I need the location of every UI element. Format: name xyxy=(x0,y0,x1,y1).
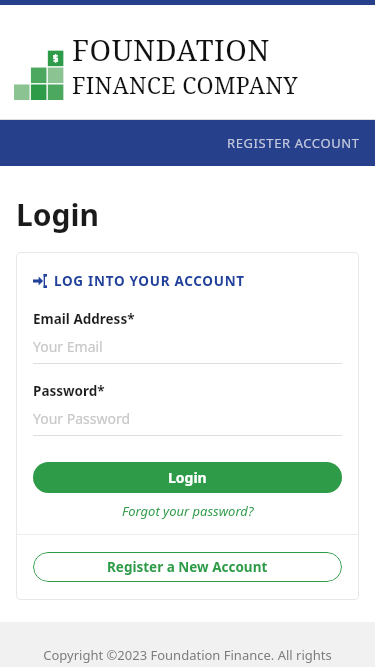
staticText: Copyright ©2023 Foundation Finance. All … xyxy=(43,646,332,664)
staticText: Password* xyxy=(33,382,105,400)
button[interactable]: Register a New Account xyxy=(33,552,342,582)
staticText: Login xyxy=(168,468,207,487)
staticText: Your Password xyxy=(33,409,131,428)
staticText: Forgot your password? xyxy=(122,502,254,520)
staticText: Your Email xyxy=(33,337,103,356)
staticText: Email Address* xyxy=(33,310,135,328)
button[interactable]: Login xyxy=(33,462,342,493)
other: Sign in xyxy=(33,274,47,288)
staticText: Login xyxy=(16,194,99,235)
button[interactable]: Your Password xyxy=(33,409,342,436)
staticText: FOUNDATION xyxy=(72,30,270,69)
staticText: LOG INTO YOUR ACCOUNT xyxy=(54,272,245,290)
staticText: Register a New Account xyxy=(107,558,268,576)
staticText: REGISTER ACCOUNT xyxy=(227,134,360,152)
staticText: FINANCE COMPANY xyxy=(72,69,298,100)
button[interactable]: Your Email xyxy=(33,337,342,364)
button[interactable]: REGISTER ACCOUNT xyxy=(212,124,375,162)
button[interactable]: Forgot your password? xyxy=(116,500,260,522)
